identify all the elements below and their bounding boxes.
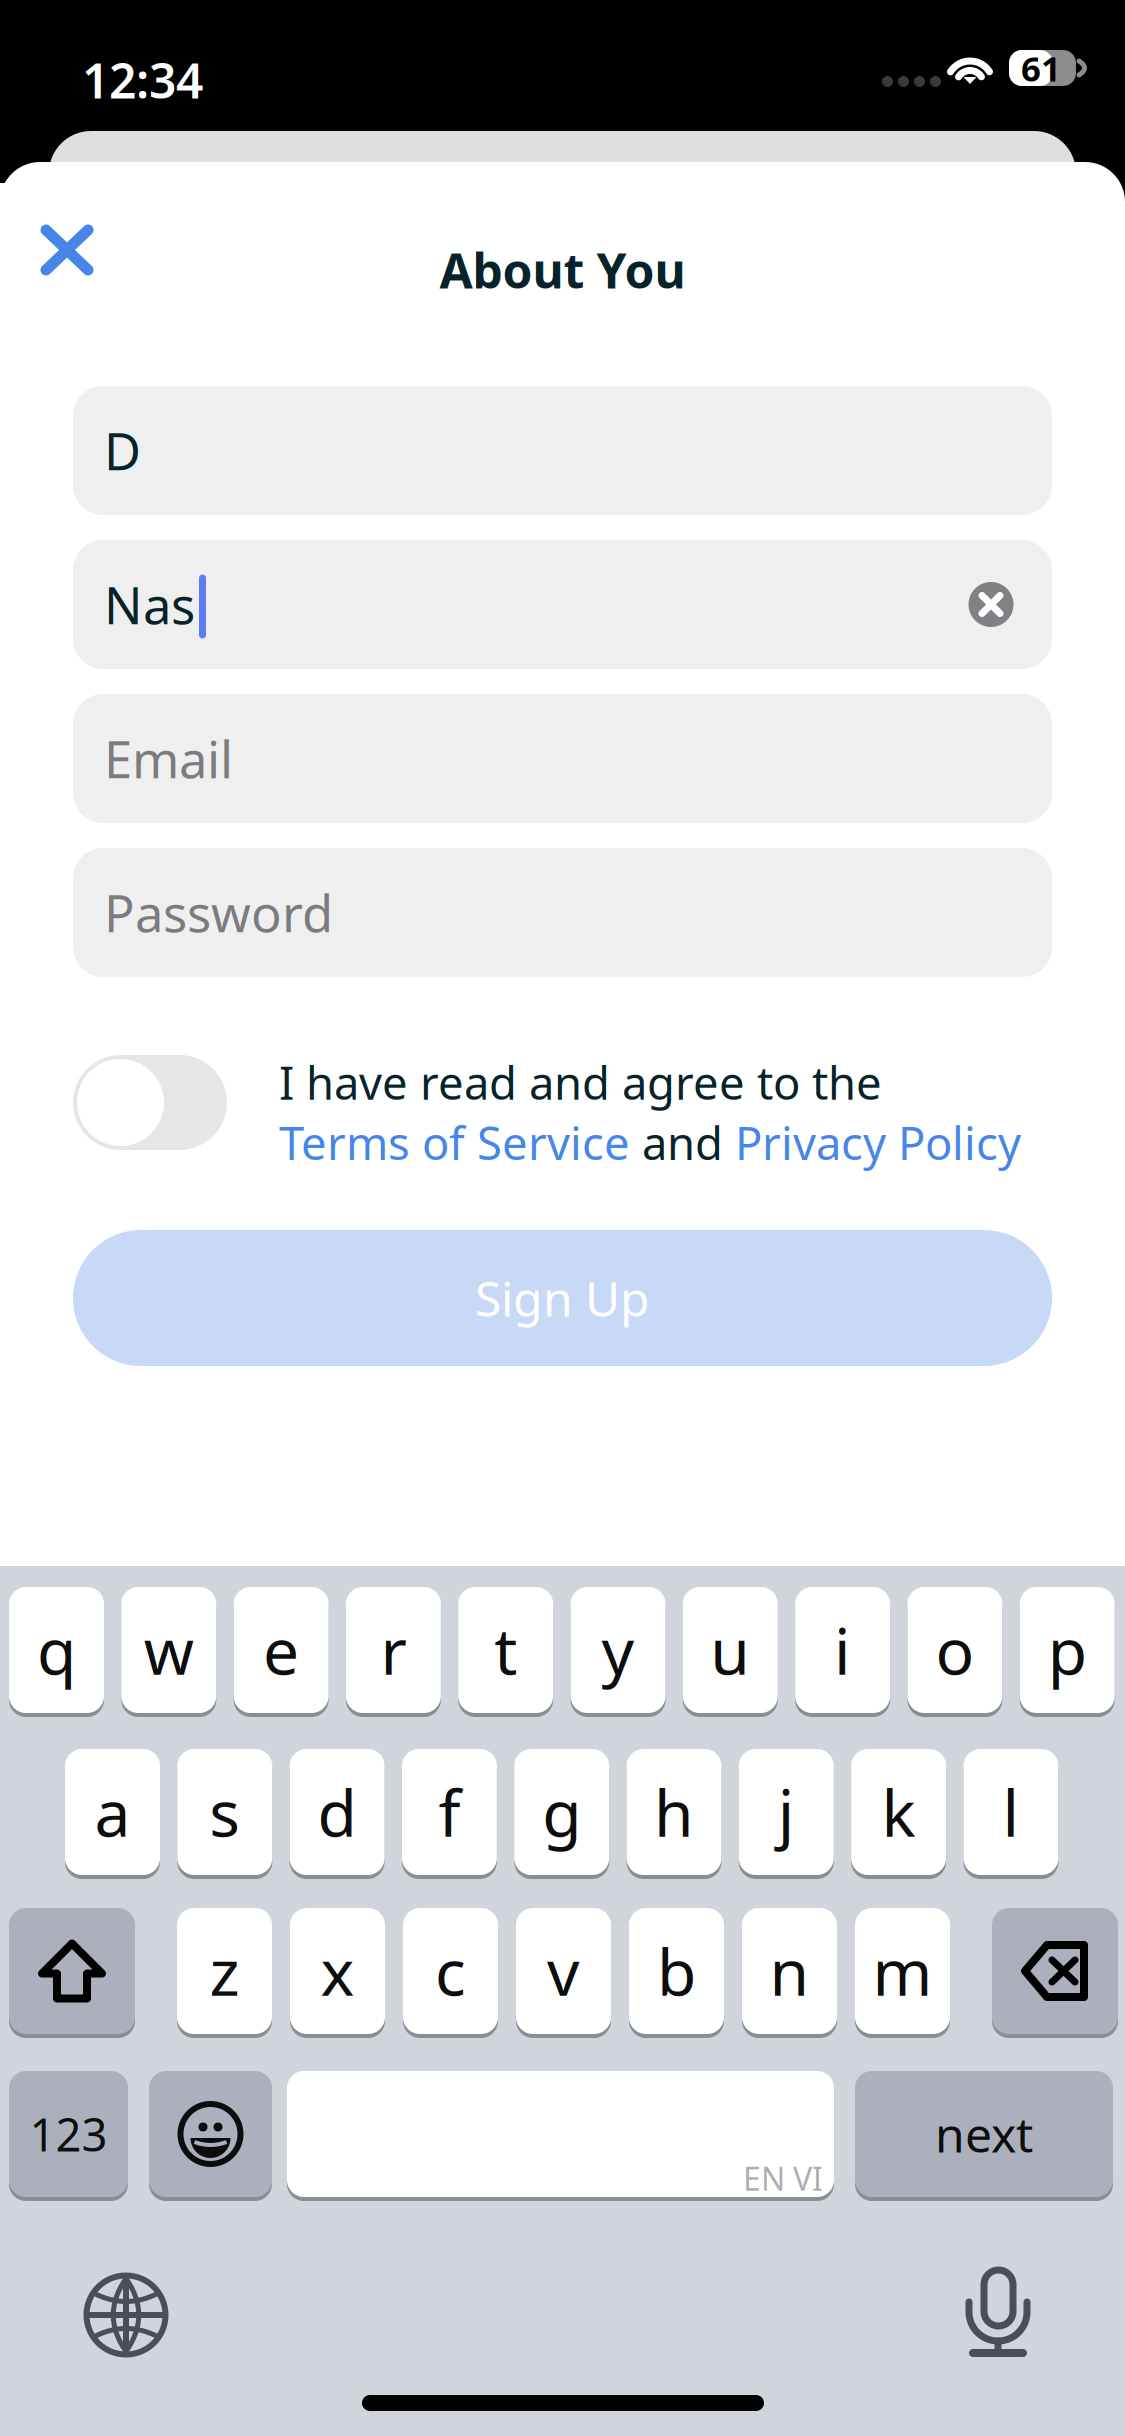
button[interactable]: k bbox=[851, 1749, 946, 1879]
button[interactable]: u bbox=[683, 1587, 778, 1717]
button[interactable]: Agree to terms of service and privacy po… bbox=[73, 1050, 1052, 1162]
button[interactable]: Emoji bbox=[149, 2071, 272, 2201]
button[interactable]: Space bbox=[287, 2071, 834, 2201]
staticText: I have read and agree to the bbox=[279, 1052, 882, 1112]
button[interactable]: i bbox=[795, 1587, 890, 1717]
staticText: o bbox=[935, 1607, 974, 1692]
button[interactable]: n bbox=[742, 1908, 837, 2038]
button[interactable]: Clear text bbox=[961, 574, 1021, 634]
button[interactable]: d bbox=[290, 1749, 385, 1879]
staticText: About You bbox=[439, 238, 685, 302]
staticText: x bbox=[320, 1928, 354, 2013]
staticText: EN VI bbox=[743, 2157, 823, 2199]
staticText: q bbox=[37, 1607, 76, 1692]
staticText: next bbox=[935, 2102, 1033, 2166]
staticText: i bbox=[834, 1607, 851, 1692]
button[interactable]: t bbox=[458, 1587, 553, 1717]
staticText: b bbox=[657, 1928, 696, 2013]
staticText: r bbox=[380, 1607, 406, 1692]
button[interactable]: l bbox=[963, 1749, 1058, 1879]
staticText: c bbox=[435, 1928, 466, 2013]
staticText: f bbox=[438, 1769, 460, 1854]
button[interactable]: o bbox=[907, 1587, 1002, 1717]
button[interactable]: r bbox=[346, 1587, 441, 1717]
staticText: d bbox=[318, 1769, 357, 1854]
button[interactable]: j bbox=[739, 1749, 834, 1879]
button[interactable]: v bbox=[516, 1908, 611, 2038]
staticText: Sign Up bbox=[475, 1266, 650, 1330]
staticText: Terms of Service bbox=[279, 1112, 630, 1172]
button[interactable]: x bbox=[290, 1908, 385, 2038]
button[interactable]: m bbox=[855, 1908, 950, 2038]
button[interactable]: Shift bbox=[9, 1908, 135, 2038]
button[interactable]: Dictate bbox=[938, 2250, 1058, 2370]
button[interactable]: Delete bbox=[992, 1908, 1118, 2038]
button[interactable]: g bbox=[514, 1749, 609, 1879]
staticText: v bbox=[547, 1928, 580, 2013]
staticText: Email bbox=[104, 725, 233, 792]
staticText: Privacy Policy bbox=[735, 1112, 1021, 1172]
staticText: l bbox=[1002, 1769, 1019, 1854]
staticText: e bbox=[263, 1607, 299, 1692]
staticText: z bbox=[209, 1928, 239, 2013]
button[interactable]: a bbox=[65, 1749, 160, 1879]
button[interactable]: Change keyboard bbox=[66, 2255, 186, 2375]
staticText: and bbox=[630, 1112, 735, 1172]
staticText: 12:34 bbox=[82, 48, 203, 112]
button[interactable]: c bbox=[403, 1908, 498, 2038]
button[interactable]: y bbox=[570, 1587, 665, 1717]
button[interactable]: Close bbox=[0, 183, 134, 317]
button[interactable]: 123 bbox=[9, 2071, 128, 2201]
button[interactable]: b bbox=[629, 1908, 724, 2038]
button[interactable]: q bbox=[9, 1587, 104, 1717]
button[interactable]: w bbox=[121, 1587, 216, 1717]
staticText: a bbox=[94, 1769, 130, 1854]
staticText: p bbox=[1048, 1607, 1087, 1692]
button[interactable]: p bbox=[1020, 1587, 1115, 1717]
button[interactable]: e bbox=[234, 1587, 329, 1717]
staticText: m bbox=[872, 1928, 932, 2013]
button[interactable]: s bbox=[177, 1749, 272, 1879]
staticText: j bbox=[778, 1769, 795, 1854]
staticText: k bbox=[882, 1769, 916, 1854]
staticText: Nas bbox=[104, 571, 195, 638]
staticText: y bbox=[601, 1607, 634, 1692]
staticText: t bbox=[494, 1607, 517, 1692]
staticText: u bbox=[710, 1607, 750, 1692]
staticText: 61 bbox=[1021, 45, 1061, 91]
staticText: D bbox=[104, 417, 141, 484]
staticText: Password bbox=[104, 879, 333, 946]
button[interactable]: Sign Up bbox=[73, 1230, 1052, 1366]
button[interactable]: z bbox=[177, 1908, 272, 2038]
staticText: g bbox=[542, 1769, 581, 1854]
staticText: 123 bbox=[29, 2104, 107, 2164]
staticText: w bbox=[144, 1607, 194, 1692]
staticText: n bbox=[769, 1928, 809, 2013]
staticText: s bbox=[209, 1769, 240, 1854]
staticText: h bbox=[654, 1769, 694, 1854]
button[interactable]: f bbox=[402, 1749, 497, 1879]
button[interactable]: h bbox=[626, 1749, 721, 1879]
button[interactable]: next bbox=[855, 2071, 1113, 2201]
